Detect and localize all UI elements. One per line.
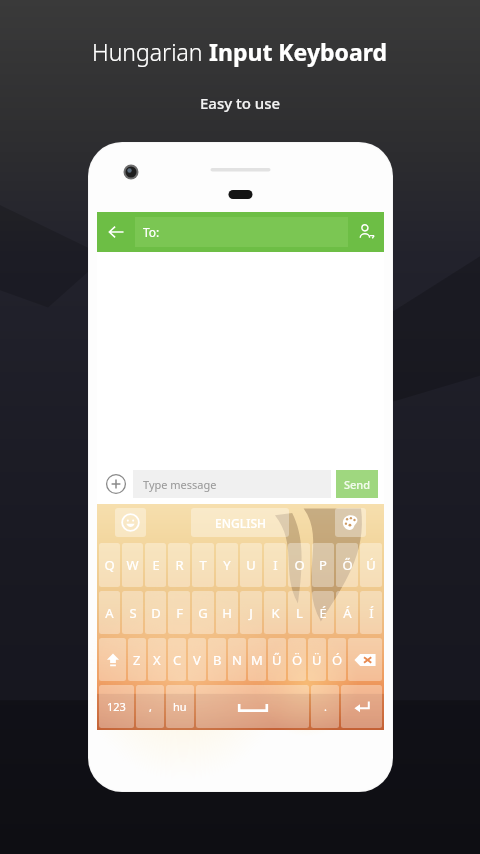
staticText: W (126, 556, 139, 574)
staticText: Input Keyboard (209, 36, 388, 67)
button[interactable]: I (264, 543, 286, 587)
button[interactable]: ENGLISH (191, 508, 289, 537)
button[interactable]: Shift (99, 638, 126, 681)
staticText: Y (223, 556, 231, 574)
staticText: X (153, 651, 161, 669)
staticText: R (175, 556, 184, 574)
button[interactable]: B (208, 638, 226, 681)
staticText: To: (143, 224, 160, 240)
button[interactable]: X (148, 638, 166, 681)
button[interactable]: H (216, 591, 238, 634)
button[interactable]: 123 (99, 685, 134, 728)
button[interactable]: R (168, 543, 190, 587)
button[interactable]: hu (166, 685, 194, 728)
button[interactable]: , (136, 685, 164, 728)
button[interactable]: Y (216, 543, 238, 587)
button[interactable]: Enter (341, 685, 382, 728)
button[interactable]: V (188, 638, 206, 681)
staticText: G (198, 604, 208, 622)
button[interactable]: Emoji (115, 508, 146, 537)
staticText: C (173, 651, 182, 669)
button[interactable]: Send (336, 470, 378, 498)
button[interactable]: To: (135, 217, 348, 247)
staticText: Á (343, 604, 352, 622)
staticText: Z (133, 651, 141, 669)
staticText: Hungarian (92, 36, 209, 67)
button[interactable]: Q (99, 543, 120, 587)
button[interactable]: D (145, 591, 166, 634)
staticText: V (193, 651, 201, 669)
staticText: U (246, 556, 256, 574)
staticText: ENGLISH (215, 515, 266, 531)
staticText: Type message (143, 477, 217, 492)
staticText: F (176, 604, 183, 622)
button[interactable]: W (122, 543, 143, 587)
button[interactable]: . (311, 685, 339, 728)
staticText: 123 (107, 699, 126, 714)
button[interactable]: Theme (335, 508, 366, 537)
button[interactable]: S (122, 591, 143, 634)
button[interactable]: Ó (328, 638, 346, 681)
staticText: Send (344, 477, 371, 492)
staticText: . (324, 699, 327, 714)
button[interactable]: Ü (308, 638, 326, 681)
button[interactable]: O (288, 543, 310, 587)
button[interactable]: Space (196, 685, 309, 728)
staticText: D (151, 604, 161, 622)
button[interactable]: Ú (360, 543, 382, 587)
button[interactable]: Ű (268, 638, 286, 681)
staticText: E (152, 556, 160, 574)
button[interactable]: L (288, 591, 310, 634)
button[interactable]: Back (97, 212, 135, 252)
button[interactable]: C (168, 638, 186, 681)
staticText: Ő (342, 556, 353, 574)
staticText: Ű (272, 651, 282, 669)
staticText: J (249, 604, 253, 622)
staticText: S (129, 604, 137, 622)
button[interactable]: Backspace (348, 638, 382, 681)
staticText: I (273, 556, 278, 574)
button[interactable]: P (312, 543, 334, 587)
button[interactable]: K (264, 591, 286, 634)
staticText: M (251, 651, 263, 669)
button[interactable]: Type message (133, 470, 331, 498)
button[interactable]: G (192, 591, 214, 634)
staticText: K (271, 604, 280, 622)
button[interactable]: É (312, 591, 334, 634)
button[interactable]: T (192, 543, 214, 587)
staticText: Í (369, 604, 374, 622)
staticText: , (149, 699, 152, 714)
staticText: hu (173, 699, 187, 714)
staticText: Ú (366, 556, 376, 574)
staticText: É (319, 604, 327, 622)
button[interactable]: U (240, 543, 262, 587)
button[interactable]: N (228, 638, 246, 681)
button[interactable]: A (99, 591, 120, 634)
staticText: P (319, 556, 327, 574)
staticText: L (296, 604, 303, 622)
button[interactable]: J (240, 591, 262, 634)
button[interactable]: E (145, 543, 166, 587)
button[interactable]: Ő (336, 543, 358, 587)
staticText: Ü (312, 651, 322, 669)
staticText: A (105, 604, 114, 622)
button[interactable]: Ö (288, 638, 306, 681)
staticText: H (222, 604, 232, 622)
staticText: Easy to use (200, 93, 281, 113)
staticText: Q (104, 556, 115, 574)
staticText: Ó (332, 651, 343, 669)
button[interactable]: Add contact (348, 212, 384, 252)
staticText: B (213, 651, 222, 669)
button[interactable]: M (248, 638, 266, 681)
button[interactable]: Z (128, 638, 146, 681)
staticText: N (232, 651, 242, 669)
staticText: T (199, 556, 207, 574)
button[interactable]: F (168, 591, 190, 634)
button[interactable]: Í (360, 591, 382, 634)
staticText: Ö (292, 651, 303, 669)
button[interactable]: Á (336, 591, 358, 634)
button[interactable]: Add attachment (103, 471, 129, 497)
staticText: O (294, 556, 305, 574)
